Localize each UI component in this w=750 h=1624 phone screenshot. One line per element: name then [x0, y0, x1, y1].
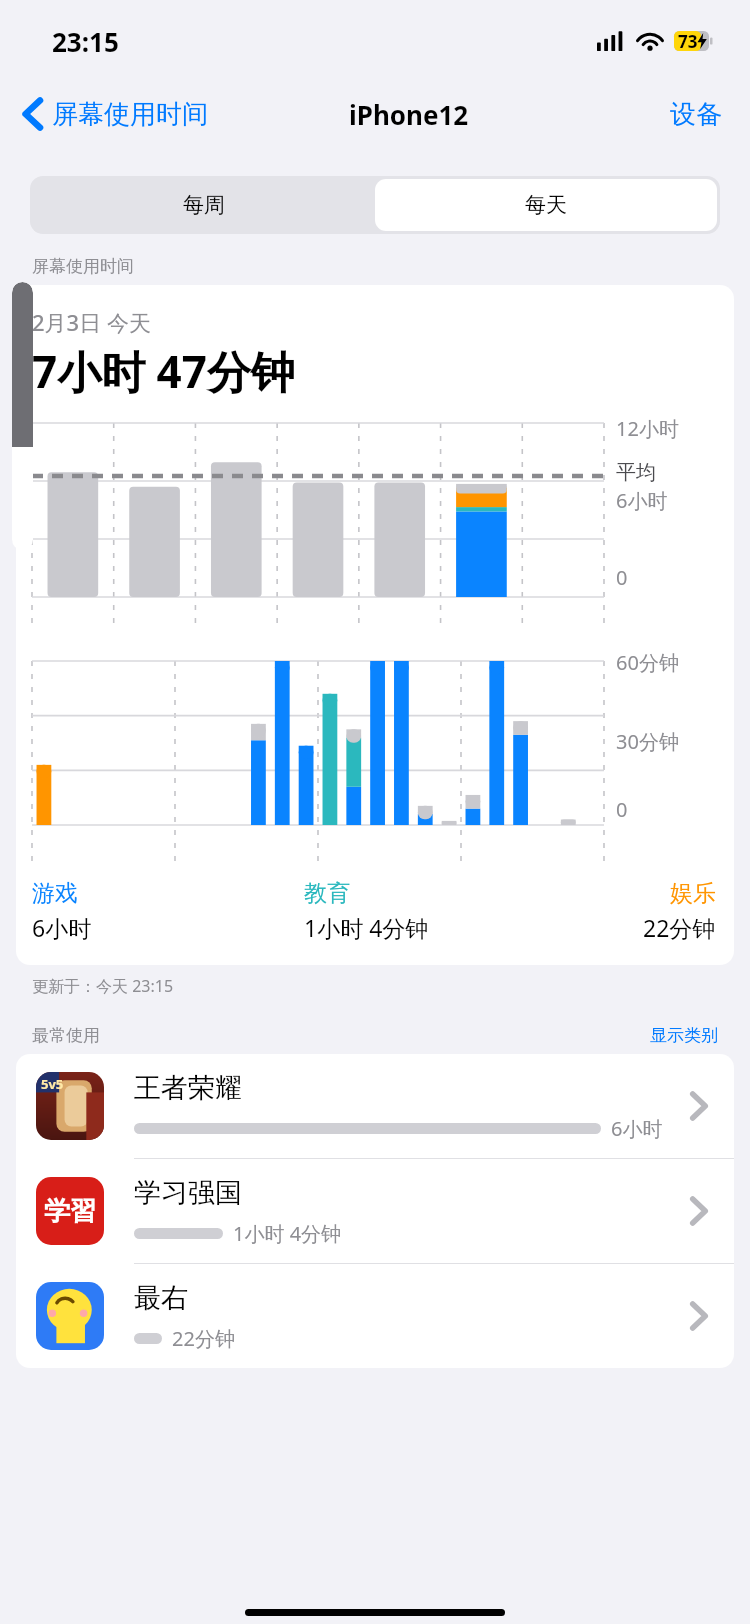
staticText: 屏幕使用时间 — [52, 98, 208, 131]
staticText: 设备 — [670, 98, 722, 131]
staticText: 6小时 — [611, 1115, 663, 1142]
button[interactable]: 每周 — [33, 179, 375, 231]
button[interactable]: 最右 — [16, 1264, 734, 1368]
other: Open 学习强国 details — [690, 1196, 708, 1226]
staticText: 学習 — [44, 1195, 96, 1228]
staticText: 22分钟 — [172, 1325, 235, 1352]
staticText: 平均 — [616, 460, 656, 485]
staticText: 屏幕使用时间 — [32, 256, 134, 277]
button[interactable]: 显示类别 — [650, 1025, 718, 1046]
staticText: iPhone12 — [349, 97, 469, 132]
staticText: 每周 — [183, 192, 225, 218]
button[interactable]: 5v5 — [16, 1054, 734, 1158]
other: Back — [22, 97, 44, 131]
staticText: 教育 — [304, 879, 350, 908]
staticText: 5v5 — [41, 1075, 64, 1093]
button[interactable]: Back — [22, 97, 208, 131]
button[interactable]: 每天 — [375, 179, 717, 231]
staticText: 2月3日 今天 — [32, 307, 151, 337]
staticText: 每天 — [525, 192, 567, 218]
staticText: 0 — [616, 564, 628, 591]
staticText: 0 — [616, 796, 628, 823]
staticText: 22分钟 — [643, 912, 716, 943]
staticText: 23:15 — [52, 24, 119, 59]
staticText: 王者荣耀 — [134, 1071, 242, 1105]
staticText: 60分钟 — [616, 649, 679, 676]
staticText: 1小时 4分钟 — [233, 1220, 342, 1247]
other: Open 王者荣耀 details — [690, 1091, 708, 1121]
staticText: 1小时 4分钟 — [304, 912, 429, 943]
button[interactable]: 设备 — [670, 98, 722, 131]
staticText: 30分钟 — [616, 728, 679, 755]
other: Open 最右 details — [690, 1301, 708, 1331]
staticText: 6小时 — [32, 912, 92, 943]
staticText: 最右 — [134, 1281, 188, 1315]
button[interactable]: 2月3日 今天 — [16, 285, 734, 965]
staticText: 游戏 — [32, 879, 78, 908]
staticText: 学习强国 — [134, 1176, 242, 1210]
staticText: 73 — [678, 30, 698, 53]
staticText: 6小时 — [616, 487, 668, 514]
staticText: 显示类别 — [650, 1025, 718, 1046]
button[interactable]: 学習 — [16, 1159, 734, 1263]
staticText: 12小时 — [616, 415, 679, 442]
staticText: 娱乐 — [670, 879, 716, 908]
staticText: 最常使用 — [32, 1025, 100, 1046]
staticText: 7小时 47分钟 — [32, 341, 295, 401]
staticText: 更新于：今天 23:15 — [32, 975, 174, 997]
